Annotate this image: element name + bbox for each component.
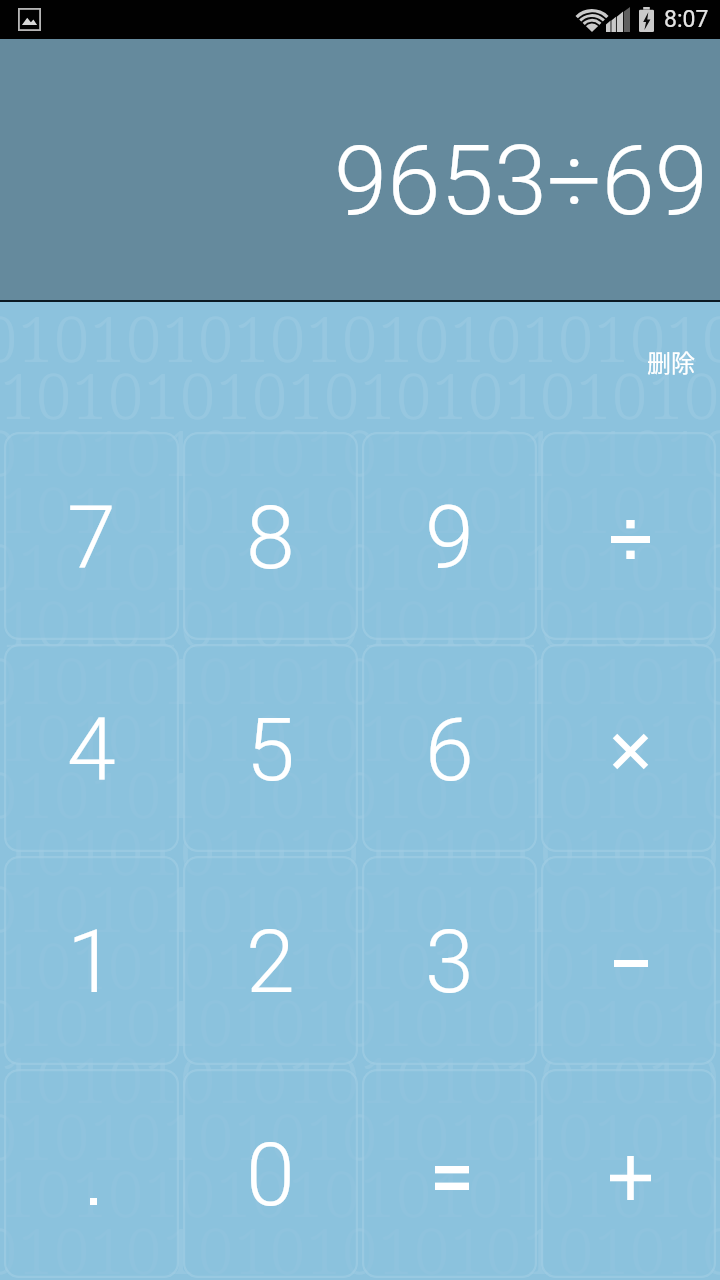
staticText: 删除 <box>647 344 695 379</box>
staticText: 8:07 <box>664 6 709 33</box>
button[interactable] <box>541 856 716 1065</box>
button[interactable] <box>541 432 716 640</box>
button[interactable]: 7 <box>4 432 179 640</box>
button[interactable]: 8 <box>183 432 358 640</box>
staticText: 5 <box>246 698 295 801</box>
button[interactable]: 9 <box>362 432 537 640</box>
button[interactable]: 2 <box>183 856 358 1065</box>
button[interactable] <box>4 1069 179 1278</box>
staticText: 2 <box>246 910 295 1013</box>
staticText: 4 <box>67 698 116 801</box>
button[interactable] <box>541 644 716 852</box>
button[interactable]: 5 <box>183 644 358 852</box>
button[interactable] <box>362 1069 537 1278</box>
button[interactable]: 0 <box>183 1069 358 1278</box>
staticText: 7 <box>67 486 116 589</box>
staticText: 8 <box>246 486 295 589</box>
staticText: 0 <box>246 1123 295 1226</box>
staticText: 3 <box>425 910 474 1013</box>
staticText: 1 <box>67 910 116 1013</box>
staticText: 9653÷69 <box>334 125 709 238</box>
button[interactable]: 6 <box>362 644 537 852</box>
button[interactable]: 删除 <box>639 338 703 385</box>
button[interactable]: 4 <box>4 644 179 852</box>
button[interactable] <box>541 1069 716 1278</box>
staticText: 6 <box>425 698 474 801</box>
staticText: 9 <box>425 486 474 589</box>
other: Screenshot <box>18 8 41 31</box>
button[interactable]: 3 <box>362 856 537 1065</box>
button[interactable]: 1 <box>4 856 179 1065</box>
